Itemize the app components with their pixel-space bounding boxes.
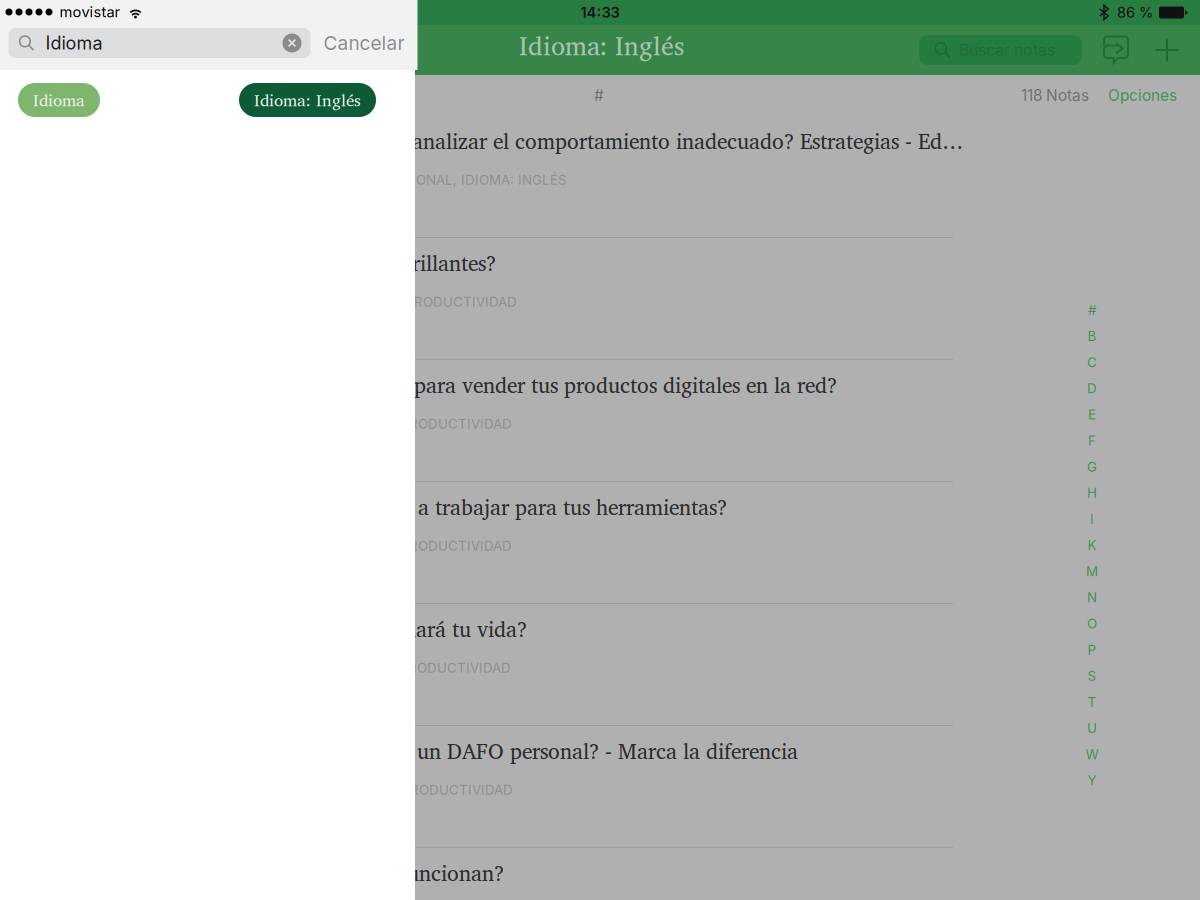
staticText: 118 Notas bbox=[1021, 86, 1089, 105]
staticText: # bbox=[594, 86, 604, 105]
staticText: F bbox=[1088, 433, 1096, 449]
staticText: O bbox=[1087, 616, 1097, 632]
staticText: Opciones bbox=[1108, 86, 1177, 105]
staticText: Buscar notas bbox=[959, 40, 1055, 60]
button[interactable]: ¿Cómo deberíamos de analizar el comporta… bbox=[0, 116, 1200, 238]
staticText: S bbox=[1087, 668, 1096, 684]
staticText: U bbox=[1087, 720, 1097, 736]
staticText: ¿Cómo hacer una web para vender tus prod… bbox=[200, 368, 837, 402]
button[interactable]: Idioma: Inglés bbox=[239, 83, 376, 117]
staticText: T bbox=[1087, 694, 1096, 710]
staticText: EDUCACIÓN, HERRAMIENTAS, PRODUCTIVIDAD bbox=[200, 538, 512, 554]
button[interactable]: Opciones bbox=[1089, 75, 1196, 116]
button[interactable]: Compartir nota bbox=[1093, 28, 1139, 72]
staticText: ¿Cómo comprobar si funcionan? bbox=[200, 856, 504, 890]
staticText: M bbox=[1086, 563, 1098, 579]
staticText: Idioma: Inglés bbox=[519, 24, 684, 67]
button[interactable]: ¿Cómo el hábito cambiará tu vida? bbox=[0, 604, 1200, 726]
button[interactable]: ¿Cómo conviene hacer un DAFO personal? -… bbox=[0, 726, 1200, 848]
button[interactable]: Buscar notas bbox=[919, 35, 1082, 65]
button[interactable]: ¿Cómo hacer una web para vender tus prod… bbox=[0, 360, 1200, 482]
staticText: ¿Cómo conviene hacer un DAFO personal? -… bbox=[200, 734, 798, 768]
button[interactable]: ¿Cómo generar ideas brillantes? bbox=[0, 238, 1200, 360]
staticText: P bbox=[1087, 642, 1096, 658]
button[interactable]: Cancelar bbox=[310, 24, 417, 62]
staticText: Idioma bbox=[33, 86, 85, 114]
button[interactable]: Nueva nota bbox=[1144, 28, 1190, 72]
staticText: Idioma: Inglés bbox=[254, 86, 361, 114]
button[interactable]: Borrar texto bbox=[282, 28, 310, 58]
staticText: W bbox=[1085, 746, 1098, 762]
staticText: I bbox=[1090, 511, 1094, 527]
staticText: ¿Cómo hacerlos volver a trabajar para tu… bbox=[200, 490, 727, 524]
button[interactable]: Idioma bbox=[18, 83, 100, 117]
staticText: K bbox=[1087, 537, 1096, 553]
staticText: H bbox=[1087, 485, 1097, 501]
staticText: 14:33 bbox=[580, 4, 619, 21]
staticText: G bbox=[1087, 459, 1097, 475]
staticText: B bbox=[1087, 328, 1096, 344]
staticText: ¿Cómo deberíamos de analizar el comporta… bbox=[200, 124, 963, 158]
staticText: EDUCACIÓN, DESARROLLO PERSONAL, IDIOMA: … bbox=[200, 172, 567, 188]
button[interactable]: ¿Cómo comprobar si funcionan? bbox=[0, 848, 1200, 900]
button[interactable]: ¿Cómo hacerlos volver a trabajar para tu… bbox=[0, 482, 1200, 604]
staticText: ¿Cómo el hábito cambiará tu vida? bbox=[200, 612, 527, 646]
staticText: 86 % bbox=[1117, 4, 1153, 21]
staticText: ¿Cómo generar ideas brillantes? bbox=[200, 246, 496, 280]
staticText: E bbox=[1088, 406, 1096, 423]
staticText: Y bbox=[1087, 772, 1096, 788]
staticText: C bbox=[1087, 354, 1097, 370]
staticText: TRABAJO, EMPRENDIMIENTO, PRODUCTIVIDAD bbox=[200, 782, 513, 798]
staticText: Cancelar bbox=[323, 31, 404, 55]
staticText: movistar bbox=[59, 3, 120, 21]
staticText: Idioma bbox=[45, 32, 102, 54]
staticText: D bbox=[1087, 380, 1097, 396]
staticText: MOTIVACIÓN, ORGANIZACIÓN, PRODUCTIVIDAD bbox=[200, 294, 517, 310]
staticText: # bbox=[1088, 302, 1096, 318]
staticText: EDUCACIÓN, ORGANIZACIÓN, PRODUCTIVIDAD bbox=[200, 660, 511, 676]
staticText: N bbox=[1087, 589, 1097, 606]
staticText: HERRAMIENTAS, MARKETING, PRODUCTIVIDAD bbox=[200, 416, 512, 432]
